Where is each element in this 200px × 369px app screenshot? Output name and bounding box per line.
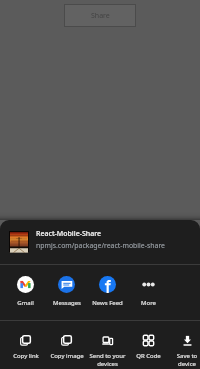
button[interactable]: More [128, 265, 169, 320]
button[interactable]: Copy image [46, 321, 87, 369]
staticText: Save to device [169, 352, 200, 368]
staticText: Share [91, 11, 110, 21]
staticText: Send to your devices [87, 352, 128, 368]
button[interactable]: News Feed [87, 265, 128, 320]
staticText: More [141, 299, 156, 307]
button[interactable]: Share [64, 4, 136, 27]
staticText: Gmail [17, 299, 34, 307]
button[interactable]: QR Code [128, 321, 169, 369]
button[interactable]: Gmail [5, 265, 46, 320]
button[interactable]: Send to your devices [87, 321, 128, 369]
button[interactable]: Save to device [169, 321, 200, 369]
staticText: Messages [53, 299, 81, 307]
button[interactable]: Messages [46, 265, 87, 320]
button[interactable]: React-Mobile-Share [0, 220, 200, 264]
staticText: React-Mobile-Share [36, 229, 101, 239]
staticText: Copy link [13, 352, 39, 360]
staticText: npmjs.com/package/react-mobile-share [36, 241, 165, 250]
button[interactable]: Copy link [5, 321, 46, 369]
staticText: QR Code [136, 352, 161, 360]
staticText: News Feed [92, 299, 123, 307]
staticText: Copy image [50, 352, 84, 360]
